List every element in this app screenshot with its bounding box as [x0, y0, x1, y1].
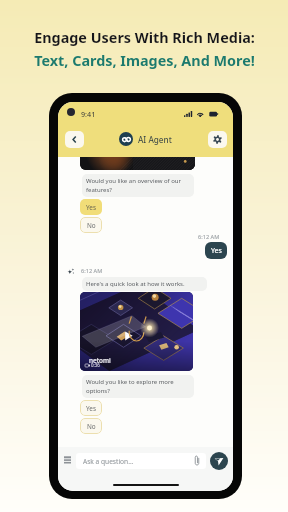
button[interactable]: Play video [80, 292, 193, 371]
button[interactable]: Yes [80, 400, 102, 416]
button[interactable]: Yes [80, 199, 102, 215]
button[interactable]: Would you like an overview of our featur… [82, 174, 194, 197]
button[interactable]: Would you like to explore more options? [82, 375, 194, 398]
staticText: 6:12 AM [81, 267, 103, 275]
staticText: netomi [89, 356, 111, 365]
button[interactable]: Ask a question... [76, 453, 206, 469]
staticText: 0:36 [91, 362, 100, 368]
staticText: Text, Cards, Images, And More! [34, 51, 255, 71]
button[interactable]: Here's a quick look at how it works. [82, 277, 207, 291]
button[interactable]: Attach file [193, 455, 201, 466]
button[interactable]: Send [210, 452, 228, 470]
staticText: 6:12 AM [198, 233, 220, 241]
staticText: AI Agent [138, 134, 172, 145]
button[interactable]: Menu [64, 455, 71, 465]
staticText: Yes [211, 246, 222, 256]
staticText: Would you like an overview of our featur… [86, 177, 190, 194]
staticText: Here's a quick look at how it works. [86, 280, 185, 288]
staticText: No [87, 221, 96, 230]
button[interactable]: Back [65, 131, 84, 148]
button[interactable]: No [80, 217, 102, 233]
staticText: Would you like to explore more options? [86, 378, 190, 395]
staticText: 9:41 [81, 109, 96, 119]
staticText: Yes [86, 203, 96, 212]
staticText: Yes [86, 404, 96, 413]
staticText: Ask a question... [83, 457, 134, 466]
staticText: No [87, 422, 96, 431]
button[interactable]: No [80, 418, 102, 434]
button[interactable]: Settings [208, 131, 227, 148]
button[interactable]: Yes [205, 242, 227, 259]
staticText: Engage Users With Rich Media: [34, 28, 255, 48]
